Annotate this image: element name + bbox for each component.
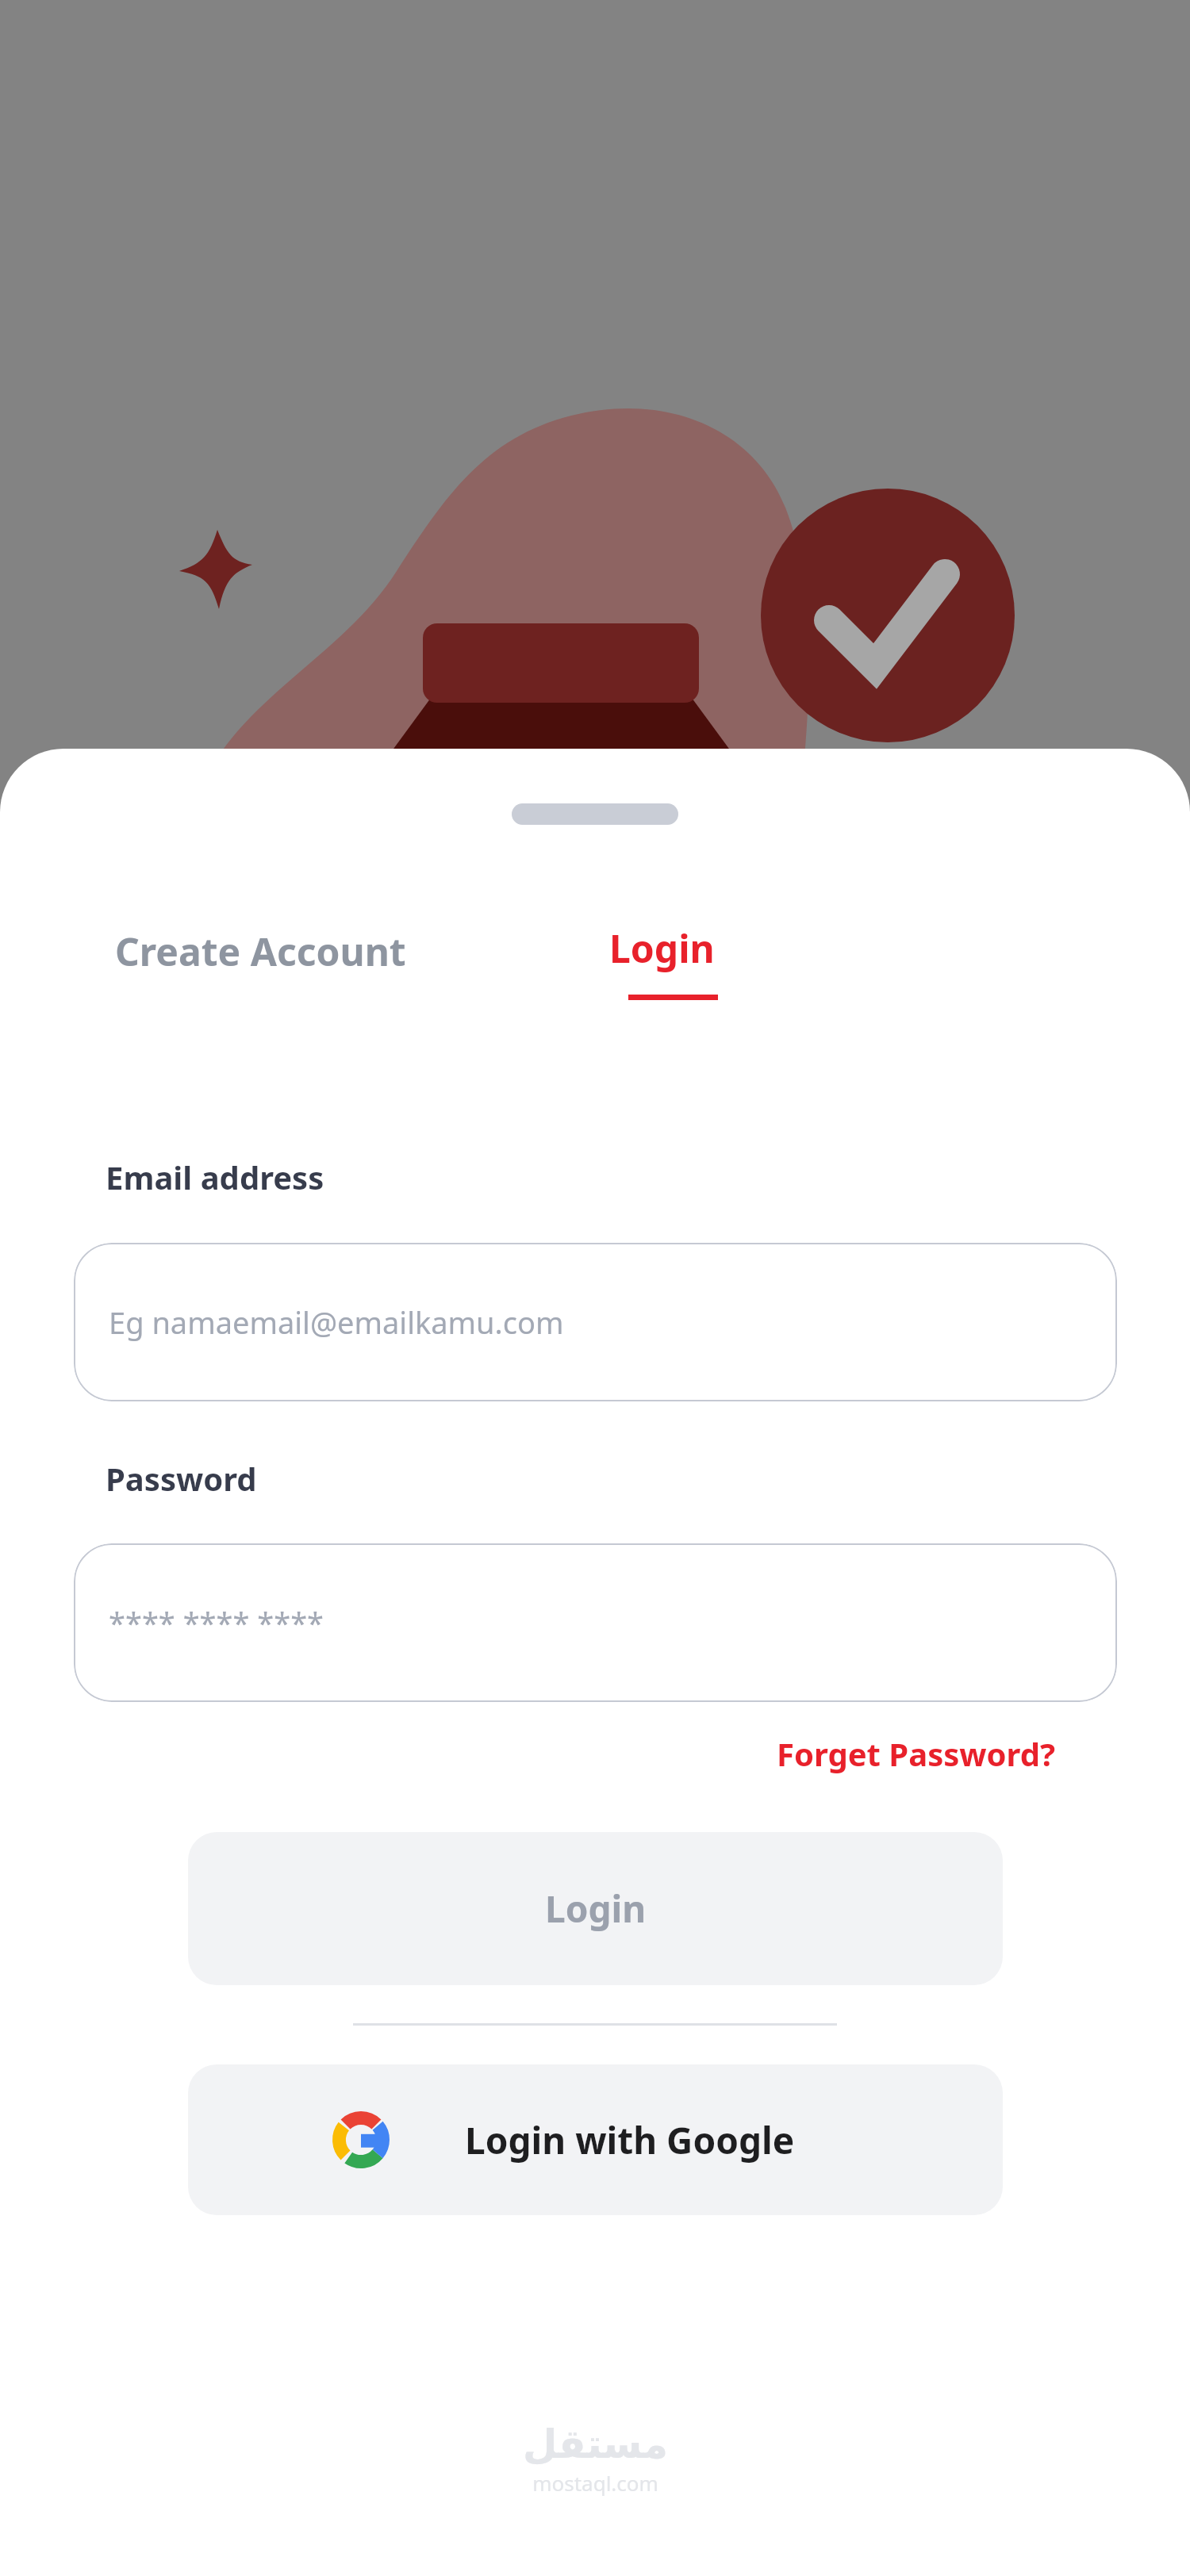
staticText: Email address	[106, 1156, 324, 1198]
staticText: Login with Google	[465, 2115, 795, 2165]
staticText: مستقل	[523, 2421, 668, 2467]
staticText: mostaql.com	[532, 2469, 658, 2497]
other: Google	[332, 2111, 390, 2168]
staticText: **** **** ****	[109, 1602, 324, 1643]
button[interactable]: Login	[595, 922, 1190, 1000]
staticText: Password	[106, 1457, 257, 1500]
staticText: Login	[609, 922, 715, 974]
button[interactable]: Login	[188, 1832, 1003, 1985]
button[interactable]: **** **** ****	[74, 1543, 1117, 1702]
staticText: Eg namaemail@emailkamu.com	[109, 1301, 564, 1343]
staticText: Forget Password?	[777, 1732, 1055, 1775]
button[interactable]: Eg namaemail@emailkamu.com	[74, 1243, 1117, 1401]
button[interactable]: Google	[188, 2064, 1003, 2215]
button[interactable]: Forget Password?	[777, 1727, 1190, 1780]
button[interactable]: Create Account	[0, 922, 595, 980]
staticText: Login	[545, 1884, 647, 1934]
staticText: Create Account	[115, 926, 406, 977]
